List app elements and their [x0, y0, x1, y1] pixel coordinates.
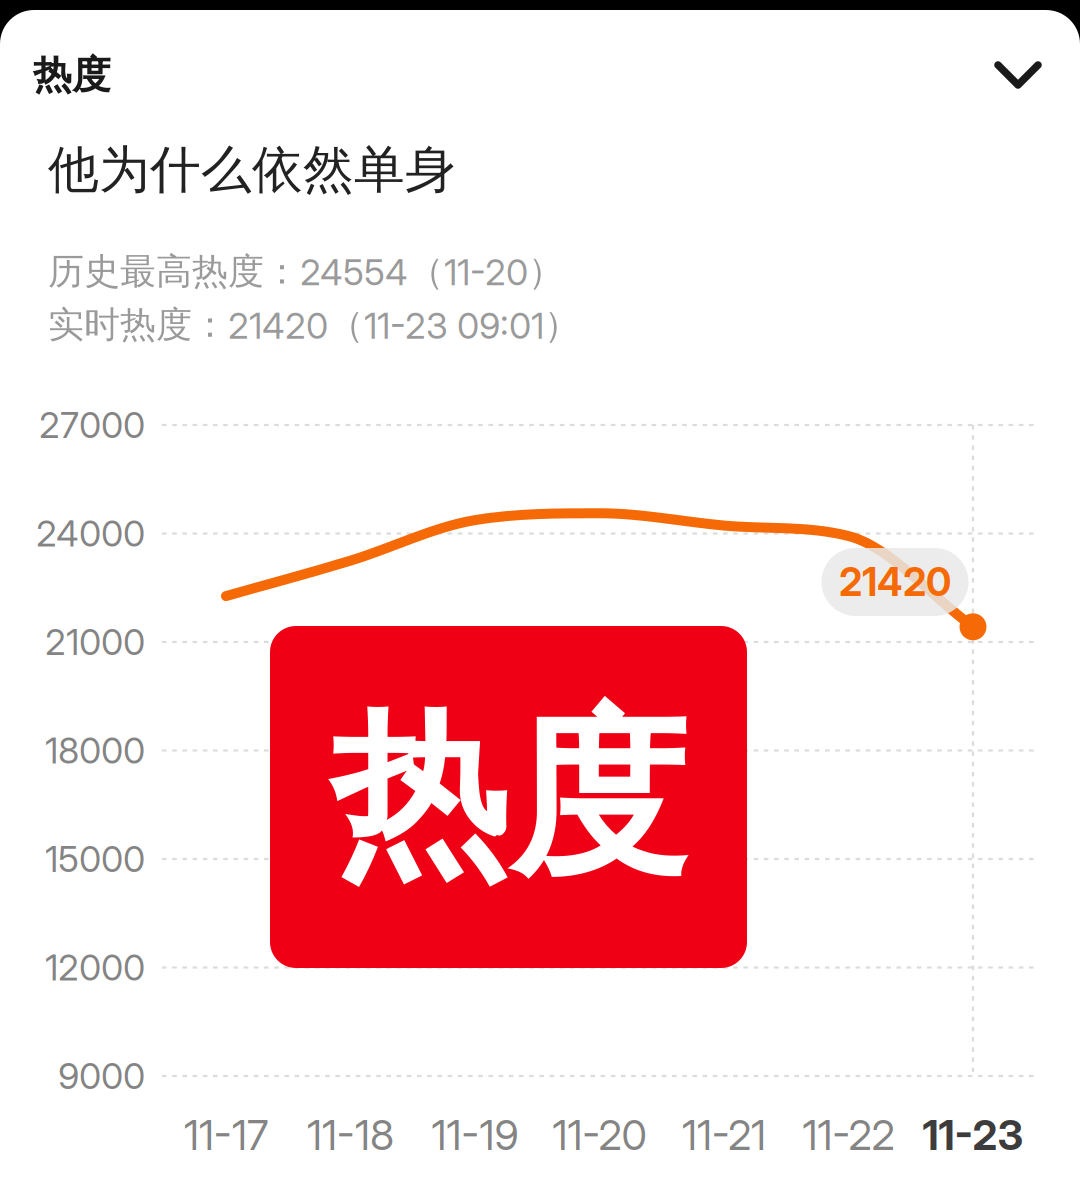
staticText: 24000: [36, 512, 145, 555]
staticText: 11-23: [922, 1110, 1023, 1160]
staticText: 18000: [45, 729, 145, 772]
staticText: 历史最高热度：24554（11-20）: [48, 249, 564, 294]
staticText: 12000: [45, 946, 145, 989]
staticText: 11-21: [682, 1110, 766, 1160]
staticText: 他为什么依然单身: [48, 138, 456, 202]
staticText: 热度: [33, 51, 111, 99]
staticText: 11-17: [184, 1110, 268, 1160]
button[interactable]: Collapse: [963, 32, 1073, 118]
staticText: 11-19: [431, 1110, 518, 1160]
staticText: 11-22: [802, 1110, 894, 1160]
staticText: 15000: [45, 837, 145, 881]
staticText: 27000: [39, 403, 145, 447]
staticText: 11-20: [552, 1110, 646, 1160]
staticText: 21000: [45, 620, 145, 664]
staticText: 21420: [839, 559, 951, 605]
staticText: 热度: [329, 684, 687, 910]
staticText: 实时热度：21420（11-23 09:01）: [48, 302, 580, 348]
staticText: 11-18: [307, 1110, 394, 1160]
staticText: 9000: [58, 1054, 145, 1098]
